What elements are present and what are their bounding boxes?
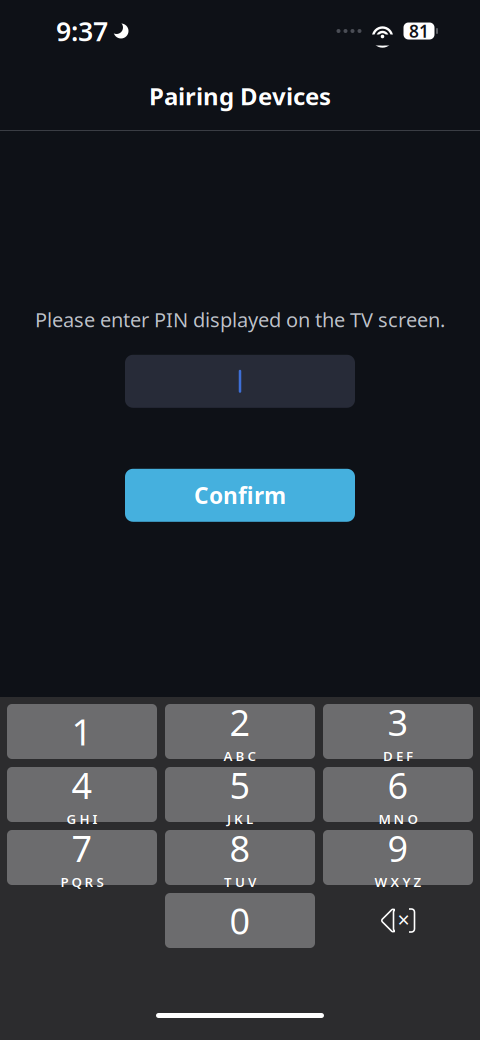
button[interactable]: 3 [323,704,473,759]
staticText: J K L [227,810,253,828]
staticText: 4 [71,761,92,809]
button[interactable]: 6 [323,767,473,822]
staticText: D E F [383,747,413,765]
staticText: 7 [71,824,92,872]
staticText: 3 [387,698,408,746]
button[interactable]: 9 [323,830,473,885]
staticText: 9:37 [56,13,108,49]
button[interactable]: 0 [165,893,315,948]
button[interactable]: Delete [323,893,473,948]
staticText: 81 [409,19,429,42]
staticText: × [397,905,409,934]
button[interactable]: 4 [7,767,157,822]
staticText: Pairing Devices [149,80,331,112]
staticText: 8 [229,824,250,872]
staticText: T U V [224,873,256,891]
staticText: Please enter PIN displayed on the TV scr… [35,306,445,333]
staticText: 2 [229,698,250,746]
staticText: 5 [229,761,250,809]
button[interactable]: 7 [7,830,157,885]
staticText: M N O [378,810,417,828]
staticText: Confirm [194,480,286,510]
button[interactable]: 1 [7,704,157,759]
button[interactable]: 2 [165,704,315,759]
staticText: A B C [223,747,256,765]
staticText: G H I [66,810,97,828]
staticText: W X Y Z [374,873,421,891]
staticText: 6 [387,761,408,809]
staticText: 9 [387,824,408,872]
staticText: P Q R S [60,873,103,891]
staticText: 0 [229,897,250,944]
button[interactable]: 8 [165,830,315,885]
staticText: 1 [71,708,92,755]
button[interactable]: PIN entry field [125,355,355,408]
button[interactable]: Confirm [125,469,355,522]
button[interactable]: 5 [165,767,315,822]
